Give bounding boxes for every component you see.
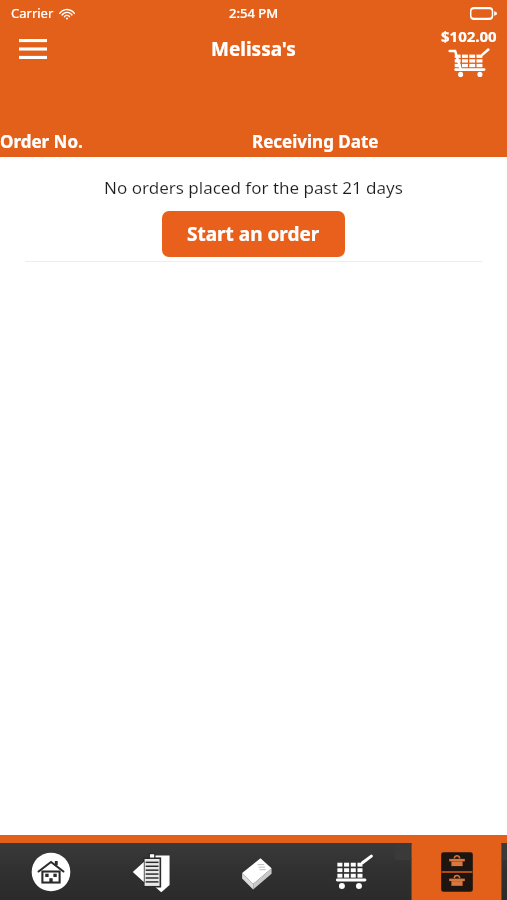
button[interactable]: Catalog: [204, 843, 305, 900]
button[interactable]: Cart: [441, 26, 497, 78]
button[interactable]: Orders: [102, 843, 204, 900]
staticText: Melissa's: [211, 36, 296, 62]
staticText: Order No.: [0, 130, 83, 153]
staticText: $102.00: [441, 26, 497, 46]
staticText: 2:54 PM: [229, 4, 279, 22]
staticText: Carrier: [11, 4, 54, 22]
staticText: Receiving Date: [252, 130, 379, 153]
button[interactable]: Menu: [10, 30, 56, 68]
button[interactable]: Home: [0, 843, 102, 900]
button[interactable]: Cart: [305, 843, 406, 900]
button[interactable]: Order History: [406, 843, 507, 900]
button[interactable]: Start an order: [162, 211, 345, 257]
staticText: No orders placed for the past 21 days: [104, 176, 403, 199]
staticText: Start an order: [187, 221, 320, 247]
